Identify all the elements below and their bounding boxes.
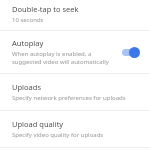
staticText: When autoplay is enabled, a suggested vi… [12,50,116,66]
button[interactable]: Double-tap to seek [0,2,150,30]
button[interactable]: Autoplay toggle [120,45,142,59]
staticText: Autoplay [12,38,44,48]
button[interactable]: Uploads [0,74,150,110]
button[interactable]: Autoplay [0,31,150,73]
staticText: Double-tap to seek [12,4,79,14]
staticText: 10 seconds [12,16,44,24]
button[interactable]: Upload quality [0,111,150,147]
staticText: Specify network preferences for uploads [12,94,126,102]
staticText: Upload quality [12,119,64,129]
staticText: Uploads [12,82,41,92]
staticText: Specify video quality for uploads [12,131,104,139]
